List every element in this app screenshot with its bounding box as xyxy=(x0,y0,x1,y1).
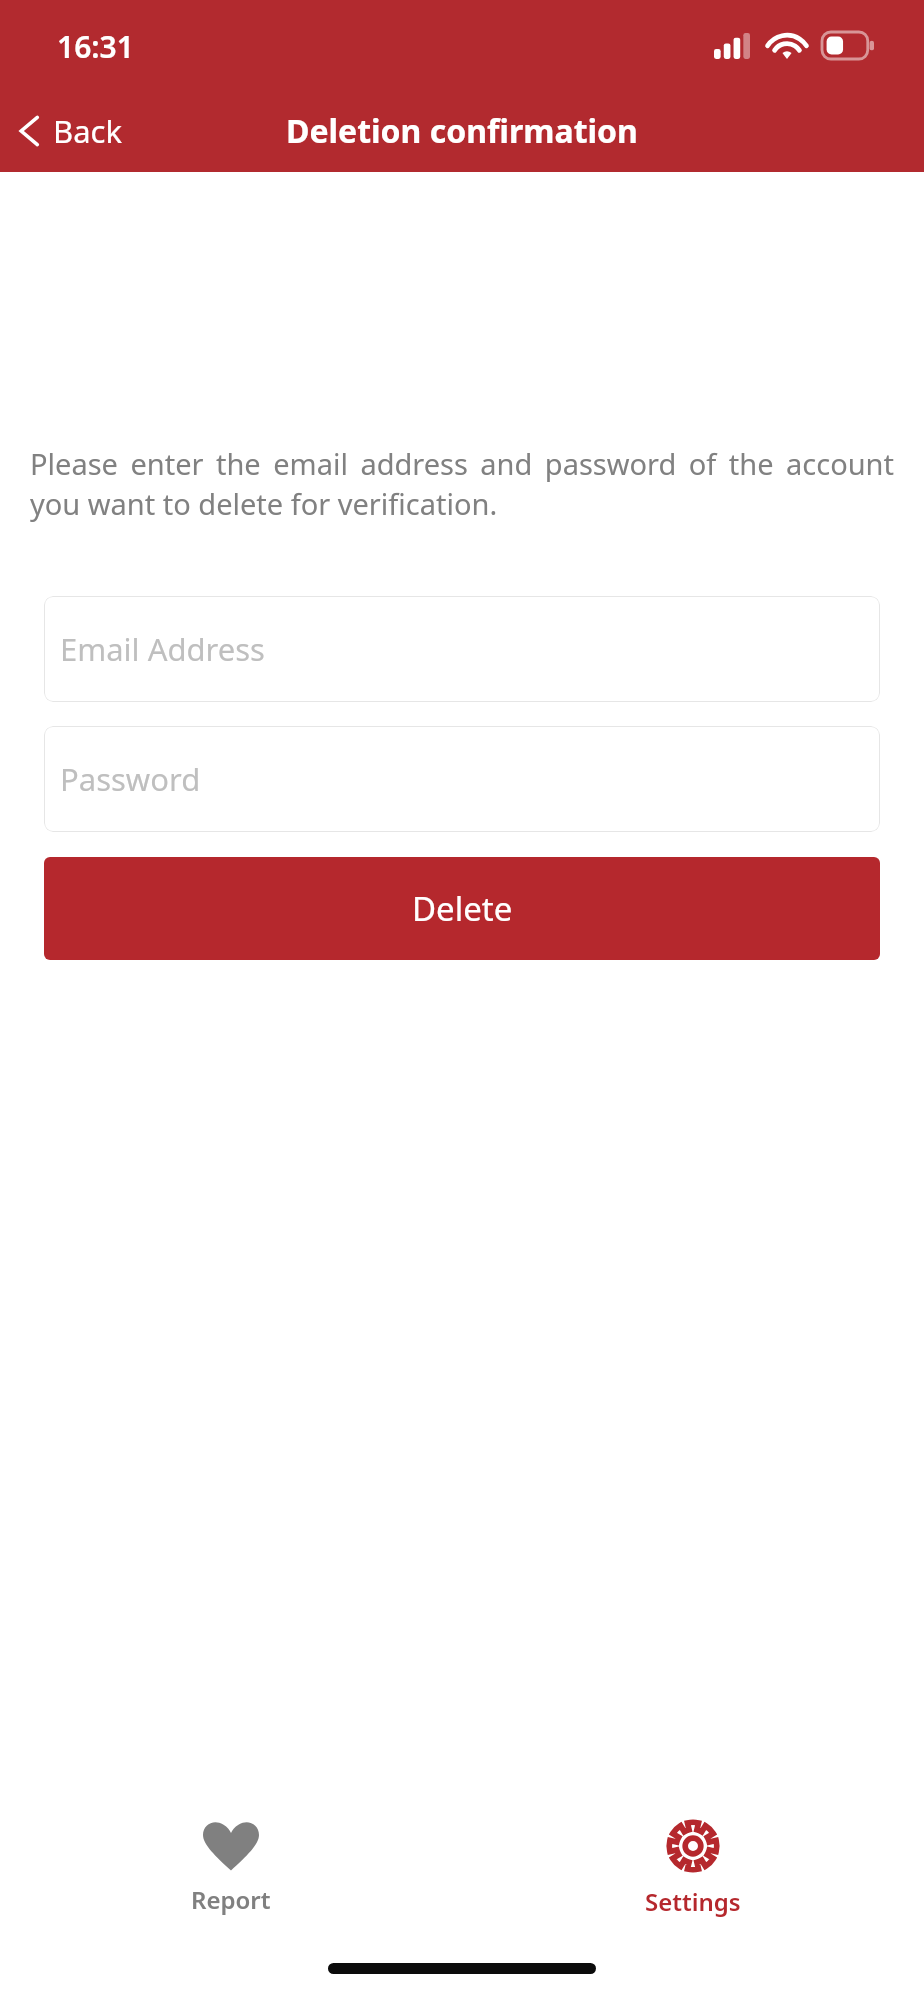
other: Cellular signal xyxy=(714,33,750,59)
other: Battery xyxy=(822,32,874,59)
staticText: Back xyxy=(53,110,122,152)
other: Settings xyxy=(666,1819,720,1873)
button[interactable]: Email Address xyxy=(44,596,880,702)
staticText: Email Address xyxy=(60,628,265,670)
button[interactable]: Settings xyxy=(605,1809,781,1928)
button[interactable]: Back xyxy=(0,102,142,160)
staticText: Report xyxy=(191,1883,271,1916)
other: Wi-Fi xyxy=(769,32,805,59)
button[interactable]: Password xyxy=(44,726,880,832)
button[interactable]: Report xyxy=(151,1811,311,1926)
staticText: Delete xyxy=(412,886,513,931)
staticText: Please enter the email address and passw… xyxy=(30,444,894,524)
other: Report xyxy=(203,1821,259,1871)
staticText: Settings xyxy=(645,1885,741,1918)
staticText: 16:31 xyxy=(57,26,134,67)
button[interactable]: Delete xyxy=(44,857,880,960)
staticText: Deletion confirmation xyxy=(286,109,638,153)
staticText: Password xyxy=(60,758,201,800)
